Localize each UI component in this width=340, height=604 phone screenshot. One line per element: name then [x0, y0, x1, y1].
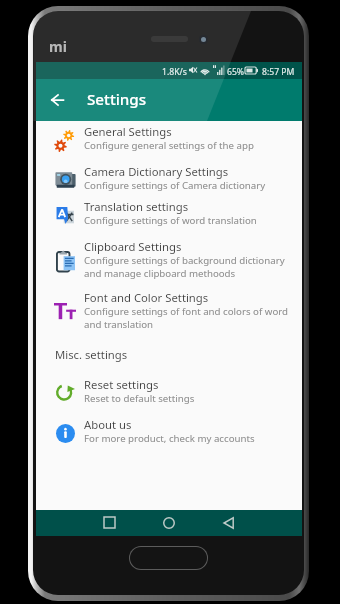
- button[interactable]: [36, 232, 302, 279]
- staticText: Configure settings of Camera dictionary: [84, 179, 266, 192]
- staticText: Misc. settings: [55, 347, 128, 362]
- staticText: About us: [84, 417, 132, 432]
- staticText: Configure settings of font and colors of…: [84, 305, 289, 318]
- staticText: 1.8K/s: [162, 66, 187, 78]
- button[interactable]: Home: [156, 510, 181, 535]
- staticText: Reset to default settings: [84, 392, 195, 405]
- staticText: and translation: [84, 318, 154, 331]
- staticText: mi: [49, 37, 67, 56]
- button[interactable]: Recents: [97, 510, 122, 535]
- staticText: Clipboard Settings: [84, 239, 182, 254]
- staticText: Configure general settings of the app: [84, 139, 254, 152]
- button[interactable]: [36, 410, 302, 446]
- button[interactable]: Back: [216, 510, 241, 535]
- staticText: and manage clipboard methoods: [84, 267, 236, 280]
- button[interactable]: [36, 117, 302, 153]
- staticText: Font and Color Settings: [84, 290, 209, 305]
- button[interactable]: [36, 283, 302, 330]
- staticText: Configure settings of word translation: [84, 214, 257, 227]
- staticText: General Settings: [84, 124, 172, 139]
- staticText: For more product, check my accounts: [84, 432, 255, 445]
- staticText: 65%: [227, 66, 244, 78]
- staticText: 8:57 PM: [262, 66, 295, 78]
- button[interactable]: [36, 192, 302, 228]
- button[interactable]: [36, 157, 302, 193]
- button[interactable]: Back: [38, 81, 70, 113]
- button[interactable]: [36, 370, 302, 406]
- staticText: Reset settings: [84, 377, 159, 392]
- staticText: Configure settings of background diction…: [84, 254, 285, 267]
- staticText: Settings: [87, 89, 147, 110]
- staticText: Translation settings: [84, 199, 189, 214]
- staticText: Camera Dictionary Settings: [84, 164, 229, 179]
